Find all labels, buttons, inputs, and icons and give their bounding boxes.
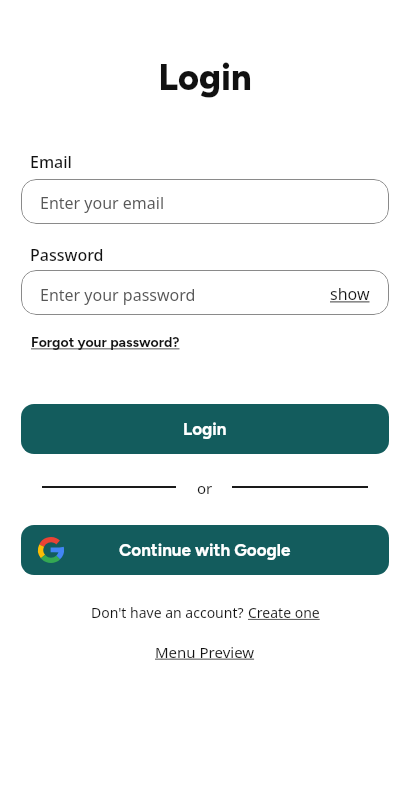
staticText: Password (30, 244, 104, 266)
staticText: Create one (248, 603, 320, 622)
button[interactable]: Forgot your password? (31, 334, 180, 351)
staticText: Menu Preview (155, 642, 255, 662)
other: Google (38, 537, 64, 563)
staticText: Don't have an account? (91, 603, 248, 622)
staticText: show (330, 283, 370, 305)
button[interactable]: Login (21, 404, 389, 454)
staticText: Login (0, 56, 410, 99)
button[interactable]: Enter your email (21, 179, 389, 224)
button[interactable]: Enter your password (21, 270, 389, 315)
staticText: Email (30, 151, 72, 173)
button[interactable]: Google (21, 525, 389, 575)
staticText: Enter your password (40, 284, 196, 306)
button[interactable]: show (330, 282, 389, 304)
staticText: Forgot your password? (31, 334, 180, 351)
button[interactable]: Create one (248, 603, 320, 622)
staticText: or (197, 478, 213, 498)
staticText: Continue with Google (119, 540, 291, 560)
button[interactable]: Menu Preview (155, 642, 255, 662)
staticText: Login (183, 419, 227, 439)
staticText: Enter your email (40, 192, 165, 214)
